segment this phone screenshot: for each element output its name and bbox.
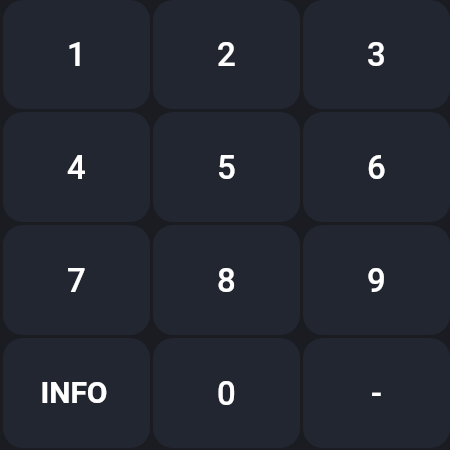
staticText: 6: [367, 148, 386, 187]
staticText: 1: [67, 35, 86, 74]
staticText: 4: [67, 148, 86, 187]
button[interactable]: 0: [153, 338, 300, 448]
button[interactable]: 5: [153, 112, 300, 222]
button[interactable]: 2: [153, 0, 300, 109]
staticText: 3: [367, 35, 386, 74]
staticText: INFO: [40, 375, 108, 410]
staticText: 8: [217, 261, 236, 300]
button[interactable]: 4: [3, 112, 150, 222]
button[interactable]: 9: [303, 225, 450, 335]
staticText: 0: [217, 374, 236, 413]
button[interactable]: -: [303, 338, 450, 448]
button[interactable]: 7: [3, 225, 150, 335]
staticText: -: [371, 374, 382, 413]
staticText: 5: [217, 148, 236, 187]
button[interactable]: 1: [3, 0, 150, 109]
button[interactable]: INFO: [3, 338, 150, 448]
staticText: 7: [67, 261, 86, 300]
button[interactable]: 8: [153, 225, 300, 335]
staticText: 2: [217, 35, 236, 74]
button[interactable]: 3: [303, 0, 450, 109]
button[interactable]: 6: [303, 112, 450, 222]
staticText: 9: [367, 261, 386, 300]
